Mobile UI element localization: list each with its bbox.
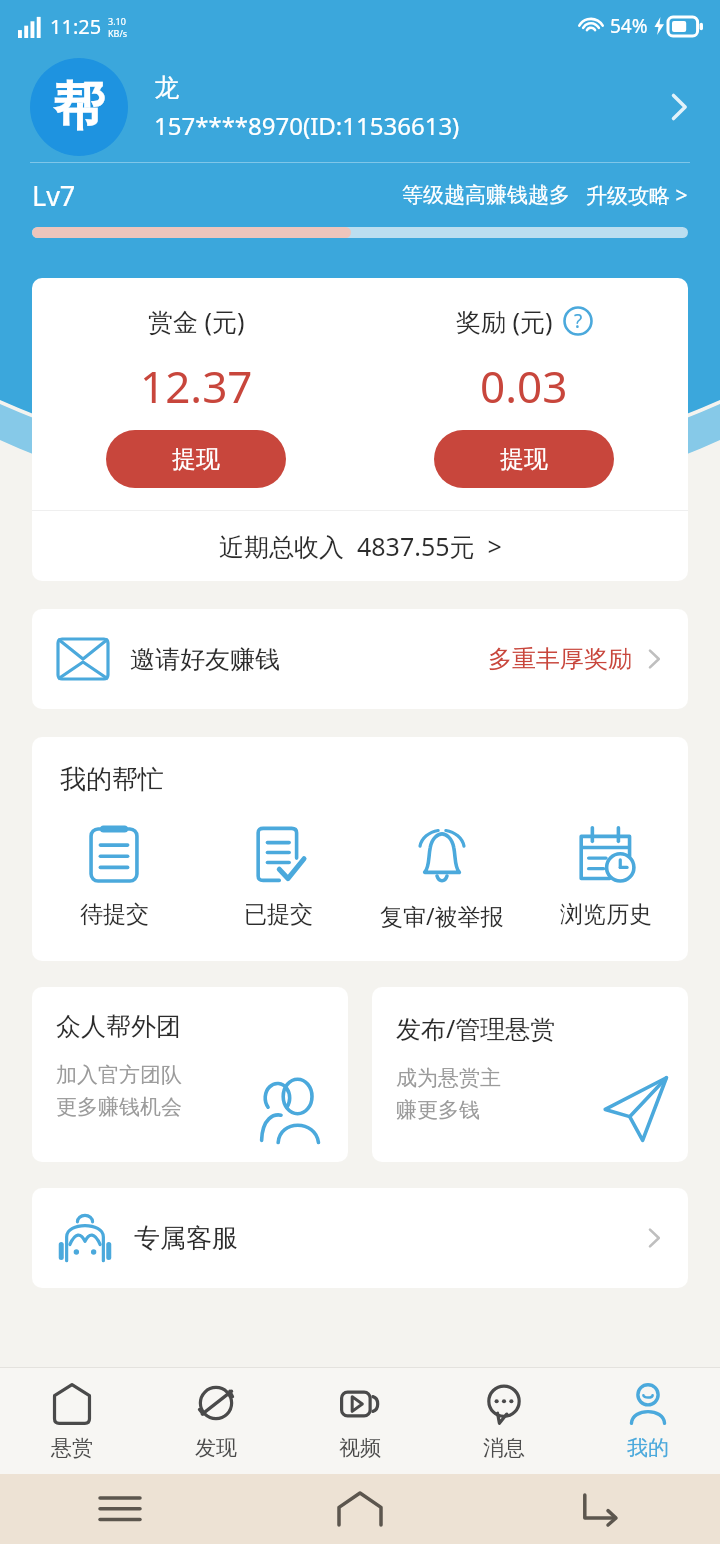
button[interactable]: 帮 (0, 52, 720, 162)
button[interactable]: 浏览历史 (524, 820, 688, 933)
staticText: 发布/管理悬赏 (396, 1011, 556, 1045)
other: Home (339, 1493, 381, 1525)
staticText: 加入官方团队 (56, 1062, 182, 1088)
staticText: Lv7 (32, 177, 76, 214)
staticText: 龙 (154, 72, 179, 103)
button[interactable]: 待提交 (32, 820, 196, 933)
staticText: 11:25 (50, 13, 102, 40)
staticText: 我的帮忙 (60, 763, 164, 796)
staticText: 我的 (627, 1435, 669, 1461)
staticText: 发现 (195, 1435, 237, 1461)
button[interactable]: Lv7 (0, 163, 720, 227)
staticText: 悬赏 (51, 1435, 93, 1461)
button[interactable]: 提现 (434, 430, 614, 488)
staticText: 浏览历史 (560, 900, 652, 929)
staticText: 提现 (172, 444, 220, 474)
staticText: 赏金 (元) (148, 304, 245, 338)
button[interactable]: 已提交 (196, 820, 360, 933)
staticText: 视频 (339, 1435, 381, 1461)
staticText: KB/s (108, 27, 128, 39)
staticText: 成为悬赏主 (396, 1065, 501, 1091)
staticText: 邀请好友赚钱 (130, 644, 280, 675)
staticText: 帮 (53, 74, 105, 140)
staticText: 已提交 (244, 900, 313, 929)
staticText: 多重丰厚奖励 (488, 644, 632, 674)
other: Back (580, 1493, 620, 1525)
staticText: 复审/被举报 (380, 900, 504, 931)
staticText: 升级攻略 > (586, 181, 688, 210)
button[interactable]: 悬赏 (0, 1368, 144, 1474)
staticText: 提现 (500, 444, 548, 474)
staticText: 等级越高赚钱越多 (402, 182, 570, 208)
staticText: 157****8970(ID:11536613) (154, 109, 460, 142)
button[interactable]: 说明 (563, 306, 593, 336)
staticText: 奖励 (元) (456, 304, 553, 338)
button[interactable]: 我的 (576, 1368, 720, 1474)
staticText: 0.03 (480, 356, 568, 416)
staticText: 更多赚钱机会 (56, 1094, 182, 1120)
other: Recents (100, 1495, 140, 1523)
button[interactable]: 发布/管理悬赏 (372, 987, 688, 1162)
button[interactable]: 专属客服 (32, 1188, 688, 1288)
staticText: 12.37 (140, 356, 253, 416)
button[interactable]: 众人帮外团 (32, 987, 348, 1162)
staticText: ? (574, 308, 583, 334)
button[interactable]: 邀请好友赚钱 (32, 609, 688, 709)
button[interactable]: 发现 (144, 1368, 288, 1474)
staticText: 3.10 (108, 15, 126, 27)
staticText: 赚更多钱 (396, 1097, 480, 1123)
button[interactable]: 近期总收入 4837.55元 > (32, 511, 688, 581)
staticText: 54% (610, 13, 648, 39)
button[interactable]: 视频 (288, 1368, 432, 1474)
staticText: 近期总收入 4837.55元 > (219, 529, 502, 563)
button[interactable]: 复审/被举报 (360, 820, 524, 935)
button[interactable]: 提现 (106, 430, 286, 488)
staticText: 待提交 (80, 900, 149, 929)
staticText: 专属客服 (134, 1222, 238, 1255)
staticText: 众人帮外团 (56, 1011, 181, 1042)
button[interactable]: 消息 (432, 1368, 576, 1474)
staticText: 消息 (483, 1435, 525, 1461)
